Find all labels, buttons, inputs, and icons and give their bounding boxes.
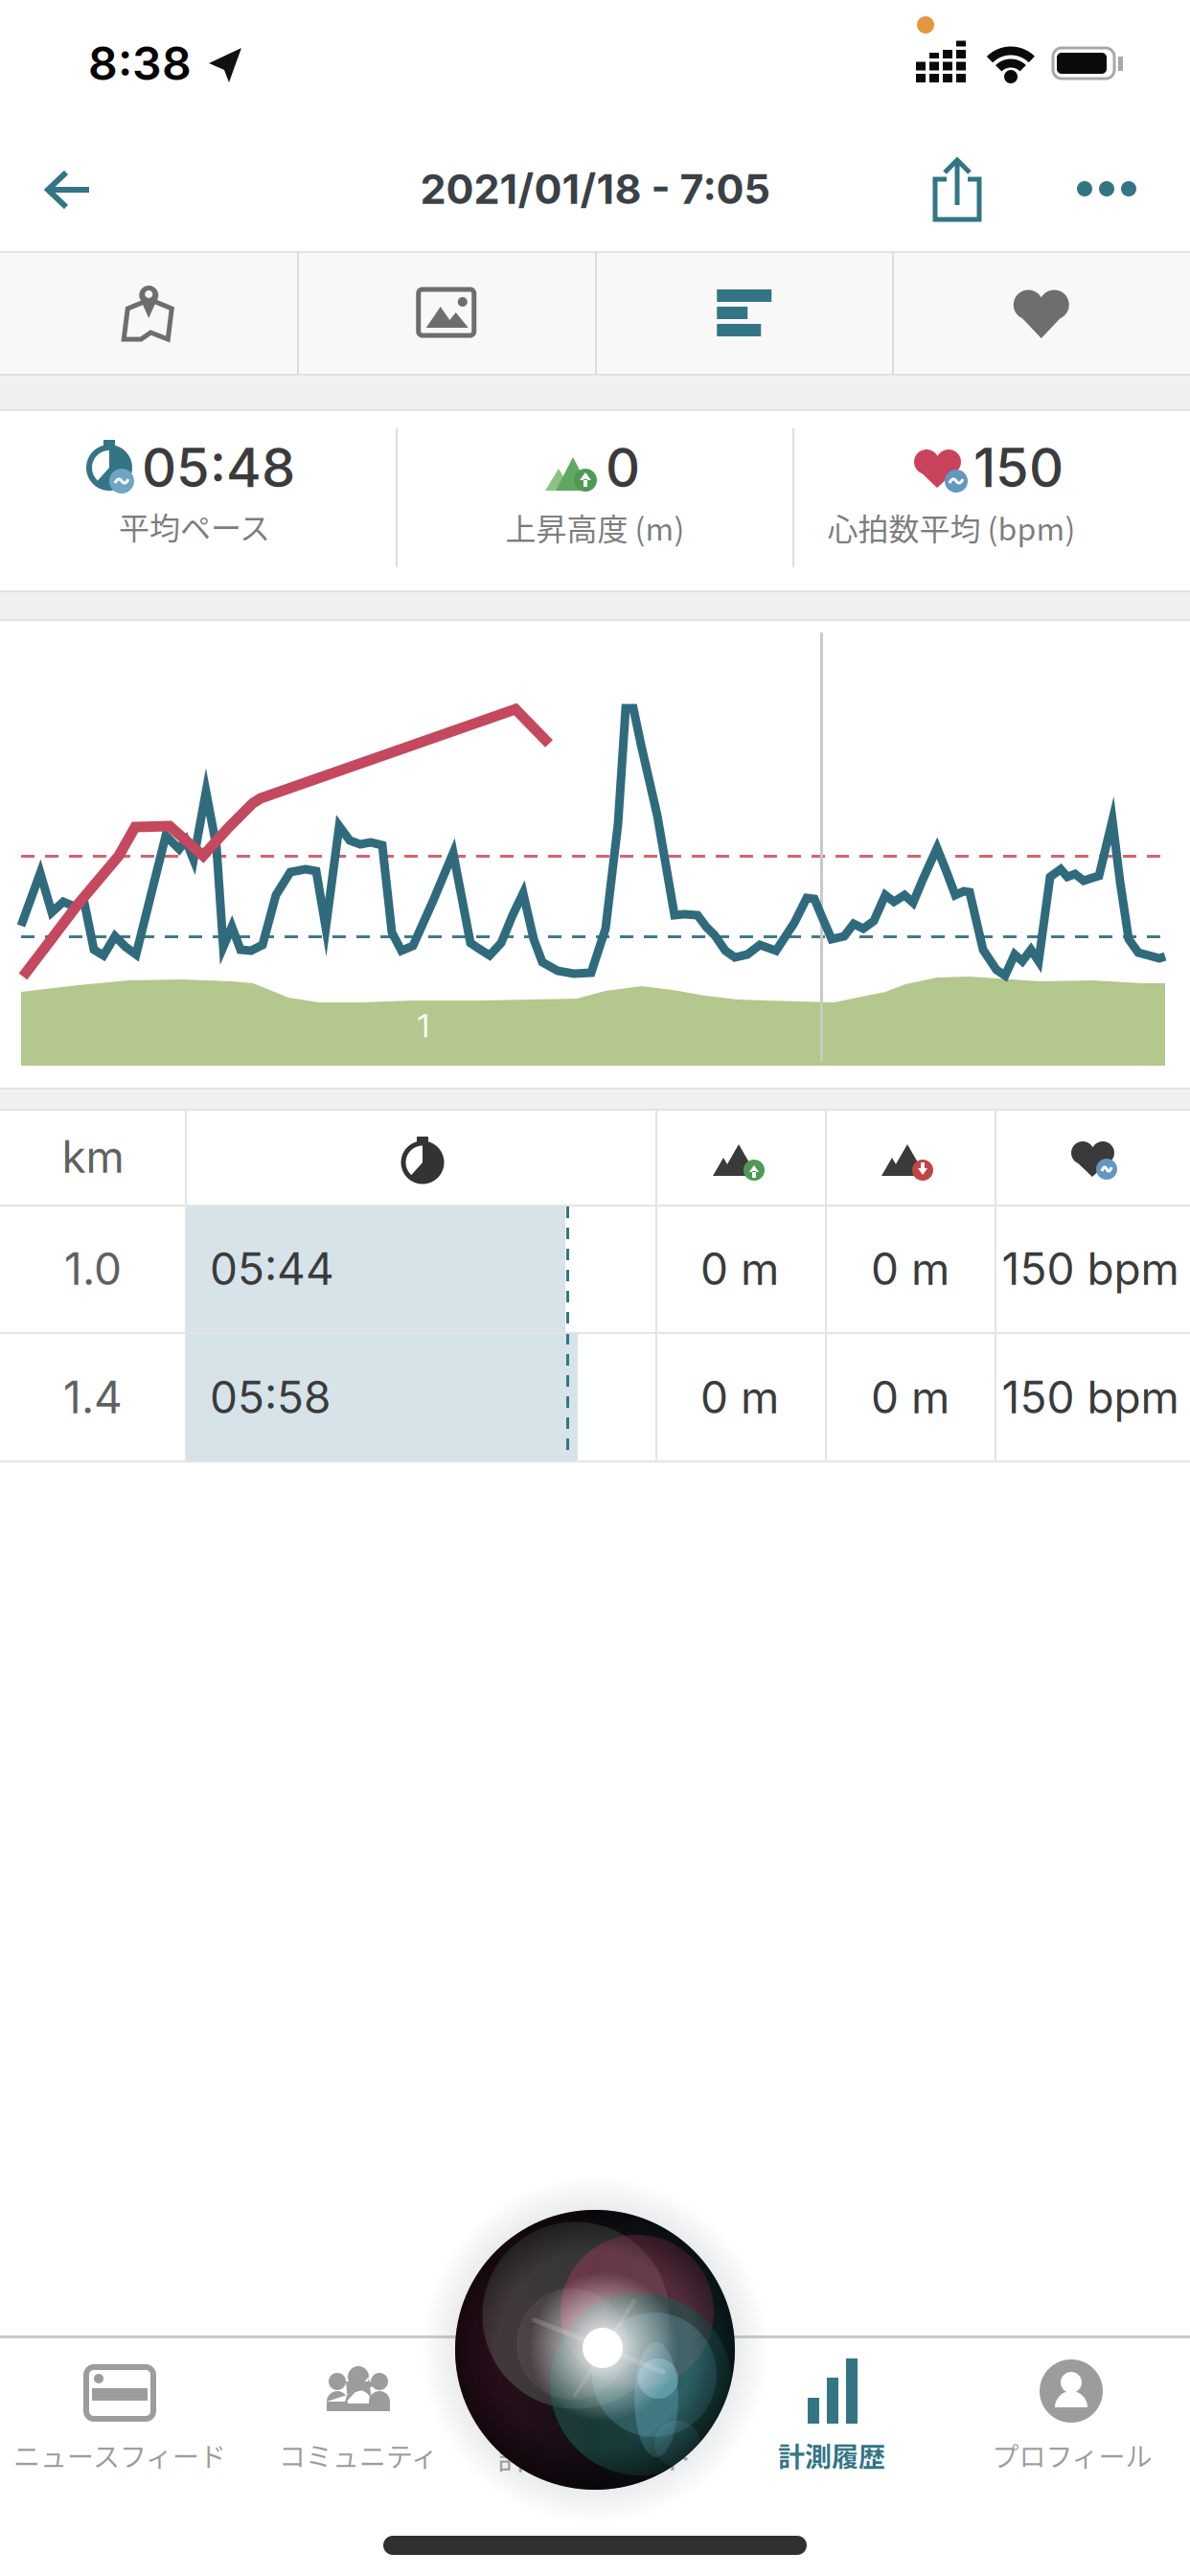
staticText: 平均ペース	[119, 504, 270, 548]
button[interactable]	[43, 169, 93, 211]
staticText: 05:44	[210, 1242, 334, 1296]
staticText: 150 bpm	[1002, 1371, 1179, 1424]
button[interactable]: コミュニティ	[234, 2336, 483, 2480]
staticText: 2021/01/18 - 7:05	[420, 164, 770, 214]
staticText: 計測スタート	[497, 2432, 693, 2479]
button[interactable]	[893, 251, 1190, 374]
staticText: 計測履歴	[778, 2436, 885, 2475]
button[interactable]	[930, 155, 984, 224]
staticText: コミュニティ	[279, 2436, 438, 2475]
staticText: プロフィール	[992, 2436, 1152, 2475]
button[interactable]: プロフィール	[948, 2336, 1190, 2480]
staticText: 150 bpm	[1002, 1242, 1179, 1296]
staticText: 0 m	[700, 1371, 779, 1424]
button[interactable]	[1076, 179, 1137, 198]
staticText: 0 m	[700, 1242, 779, 1296]
staticText: 1.4	[63, 1371, 123, 1424]
staticText: 05:58	[210, 1371, 331, 1424]
staticText: 上昇高度 (m)	[505, 505, 685, 549]
staticText: 1	[417, 1006, 430, 1045]
button[interactable]: 計測履歴	[707, 2336, 956, 2480]
staticText: 0	[606, 435, 640, 500]
button[interactable]: ニュースフィード	[0, 2336, 244, 2480]
staticText: 1.0	[64, 1242, 122, 1296]
staticText: km	[62, 1130, 124, 1183]
staticText: 0 m	[871, 1371, 950, 1424]
button[interactable]	[0, 251, 297, 374]
button[interactable]	[298, 251, 595, 374]
staticText: 心拍数平均 (bpm)	[827, 505, 1076, 549]
button[interactable]: 計測スタート	[470, 2336, 720, 2480]
staticText: 05:48	[142, 435, 295, 500]
staticText: ニュースフィード	[13, 2436, 226, 2475]
staticText: 150	[973, 435, 1064, 500]
staticText: 8:38	[88, 35, 192, 91]
staticText: 0 m	[871, 1242, 950, 1296]
button[interactable]	[595, 251, 892, 374]
